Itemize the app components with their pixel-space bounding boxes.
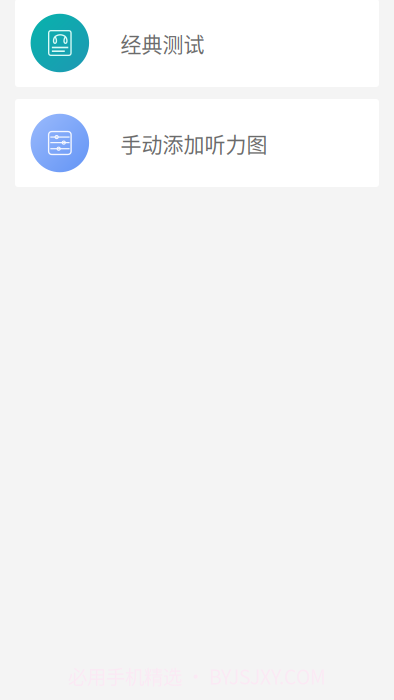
staticText: 手动添加听力图 (121, 128, 268, 158)
button[interactable]: 手动添加听力图 (15, 99, 379, 187)
button[interactable]: 经典测试 (15, 0, 379, 87)
staticText: 必用手机精选 · BYJSJXY.COM (68, 662, 326, 690)
staticText: 经典测试 (121, 28, 205, 58)
